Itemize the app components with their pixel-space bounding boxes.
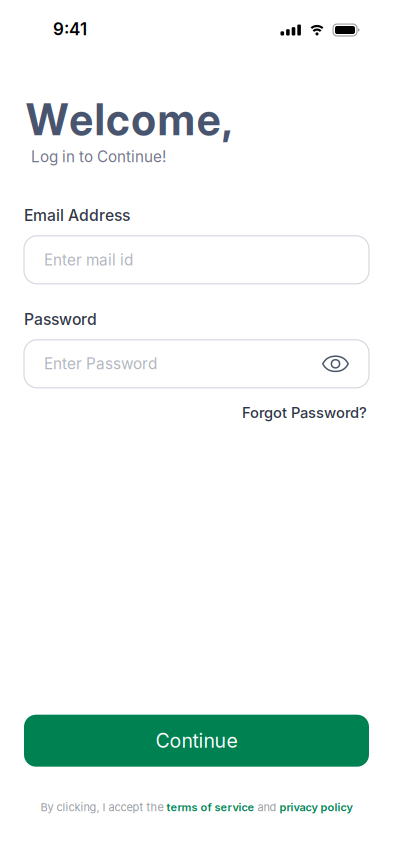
staticText: Forgot Password?	[242, 404, 367, 422]
staticText: o	[131, 94, 156, 145]
staticText: W	[26, 94, 68, 145]
staticText: m	[157, 94, 195, 145]
staticText: Email Address	[24, 206, 130, 225]
staticText: 9:41	[53, 19, 87, 39]
staticText: Enter mail id	[44, 251, 133, 269]
staticText: By clicking, I accept the	[40, 801, 166, 814]
staticText: privacy policy	[279, 801, 352, 814]
staticText: e	[197, 94, 221, 145]
staticText: ,	[222, 94, 232, 145]
staticText: e	[69, 94, 93, 145]
staticText: Enter Password	[44, 355, 157, 373]
staticText: Log in to Continue!	[31, 147, 166, 166]
staticText: Continue	[155, 729, 237, 752]
staticText: c	[106, 94, 130, 145]
staticText: terms of service	[166, 801, 254, 814]
staticText: l	[95, 94, 105, 145]
staticText: and	[254, 801, 279, 814]
staticText: Password	[24, 310, 97, 329]
